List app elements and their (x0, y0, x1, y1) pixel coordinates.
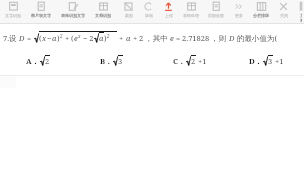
staticText: 更多 (235, 13, 243, 18)
staticText: a (52, 33, 57, 43)
staticText: − (47, 33, 52, 43)
staticText: ) (57, 33, 60, 43)
staticText: ) (104, 33, 107, 43)
button[interactable]: 上传 (162, 1, 175, 18)
staticText: 3 (268, 56, 273, 66)
staticText: 关闭 (280, 13, 288, 18)
staticText: C． (173, 56, 186, 66)
staticText: = 2.71828 ，则 (174, 33, 229, 43)
staticText: +1 (273, 56, 284, 66)
staticText: + ( (63, 33, 74, 43)
staticText: ( (39, 33, 42, 43)
staticText: + 2 ，其中 (131, 33, 170, 43)
staticText: D (229, 33, 235, 43)
staticText: 表格识别文字 (61, 13, 85, 18)
staticText: 分栏排版 (253, 13, 269, 18)
staticText: 2 (107, 33, 110, 39)
staticText: + (117, 33, 126, 43)
staticText: 文档助手 (300, 13, 302, 23)
staticText: − 2 (81, 33, 94, 43)
button[interactable]: 文档识别 (94, 1, 112, 18)
staticText: D． (249, 56, 263, 66)
staticText: 2 (60, 33, 63, 39)
staticText: 裁剪 (125, 13, 133, 18)
staticText: 2 (191, 56, 196, 66)
staticText: +1 (196, 56, 207, 66)
staticText: x (78, 33, 81, 39)
staticText: e (170, 33, 174, 43)
staticText: 的最小值为( (235, 33, 278, 43)
button[interactable]: 裁剪 (122, 1, 135, 18)
staticText: a (99, 33, 104, 43)
button[interactable]: 文字识别 (4, 1, 22, 18)
staticText: e (74, 33, 78, 43)
button[interactable]: 表格处理 (182, 1, 200, 18)
button[interactable]: 关闭 (277, 1, 290, 18)
staticText: A． (26, 56, 40, 66)
button[interactable]: 分栏 (252, 1, 270, 18)
staticText: 7.设 (3, 33, 19, 43)
staticText: 文字识别 (5, 13, 21, 18)
button[interactable]: A． (26, 55, 50, 66)
button[interactable]: D． (249, 55, 284, 66)
staticText: a (126, 33, 131, 43)
staticText: 表格处理 (183, 13, 199, 18)
button[interactable]: 文档助手 (299, 1, 303, 23)
staticText: 上传 (165, 13, 173, 18)
staticText: 3 (118, 56, 123, 66)
button[interactable]: 旋转 (142, 1, 155, 18)
staticText: 旋转 (145, 13, 153, 18)
staticText: 2 (45, 56, 50, 66)
button[interactable]: 更多 (232, 1, 245, 18)
staticText: 图片转文字 (31, 13, 51, 18)
staticText: 文档识别 (95, 13, 111, 18)
staticText: D (19, 33, 25, 43)
staticText: x (42, 33, 47, 43)
button[interactable]: B． (100, 55, 123, 66)
button[interactable]: C． (173, 55, 207, 66)
staticText: = (25, 33, 34, 43)
button[interactable]: 页面设置 (207, 1, 225, 18)
staticText: 页面设置 (208, 13, 224, 18)
button[interactable]: 图片转文字 (30, 1, 52, 18)
button[interactable]: 表格识别 (60, 1, 86, 18)
staticText: B． (100, 56, 113, 66)
